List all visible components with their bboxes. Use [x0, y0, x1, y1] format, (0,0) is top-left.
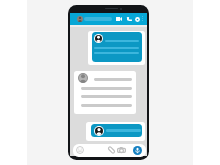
button[interactable]: Send voice message	[133, 146, 142, 155]
button[interactable]: Video call	[116, 17, 122, 21]
button[interactable]: Message	[88, 31, 145, 65]
button[interactable]: Message input	[73, 144, 146, 157]
button[interactable]: Call	[127, 17, 132, 21]
button[interactable]: Settings	[135, 17, 140, 22]
button[interactable]: Emoji	[76, 146, 84, 154]
button[interactable]: Attach file	[108, 147, 115, 153]
button[interactable]: Camera	[117, 147, 126, 153]
button[interactable]: Message	[86, 122, 145, 141]
button[interactable]: Conversation header	[70, 13, 147, 25]
button[interactable]: Message	[74, 71, 136, 114]
button[interactable]: More options	[142, 16, 143, 21]
